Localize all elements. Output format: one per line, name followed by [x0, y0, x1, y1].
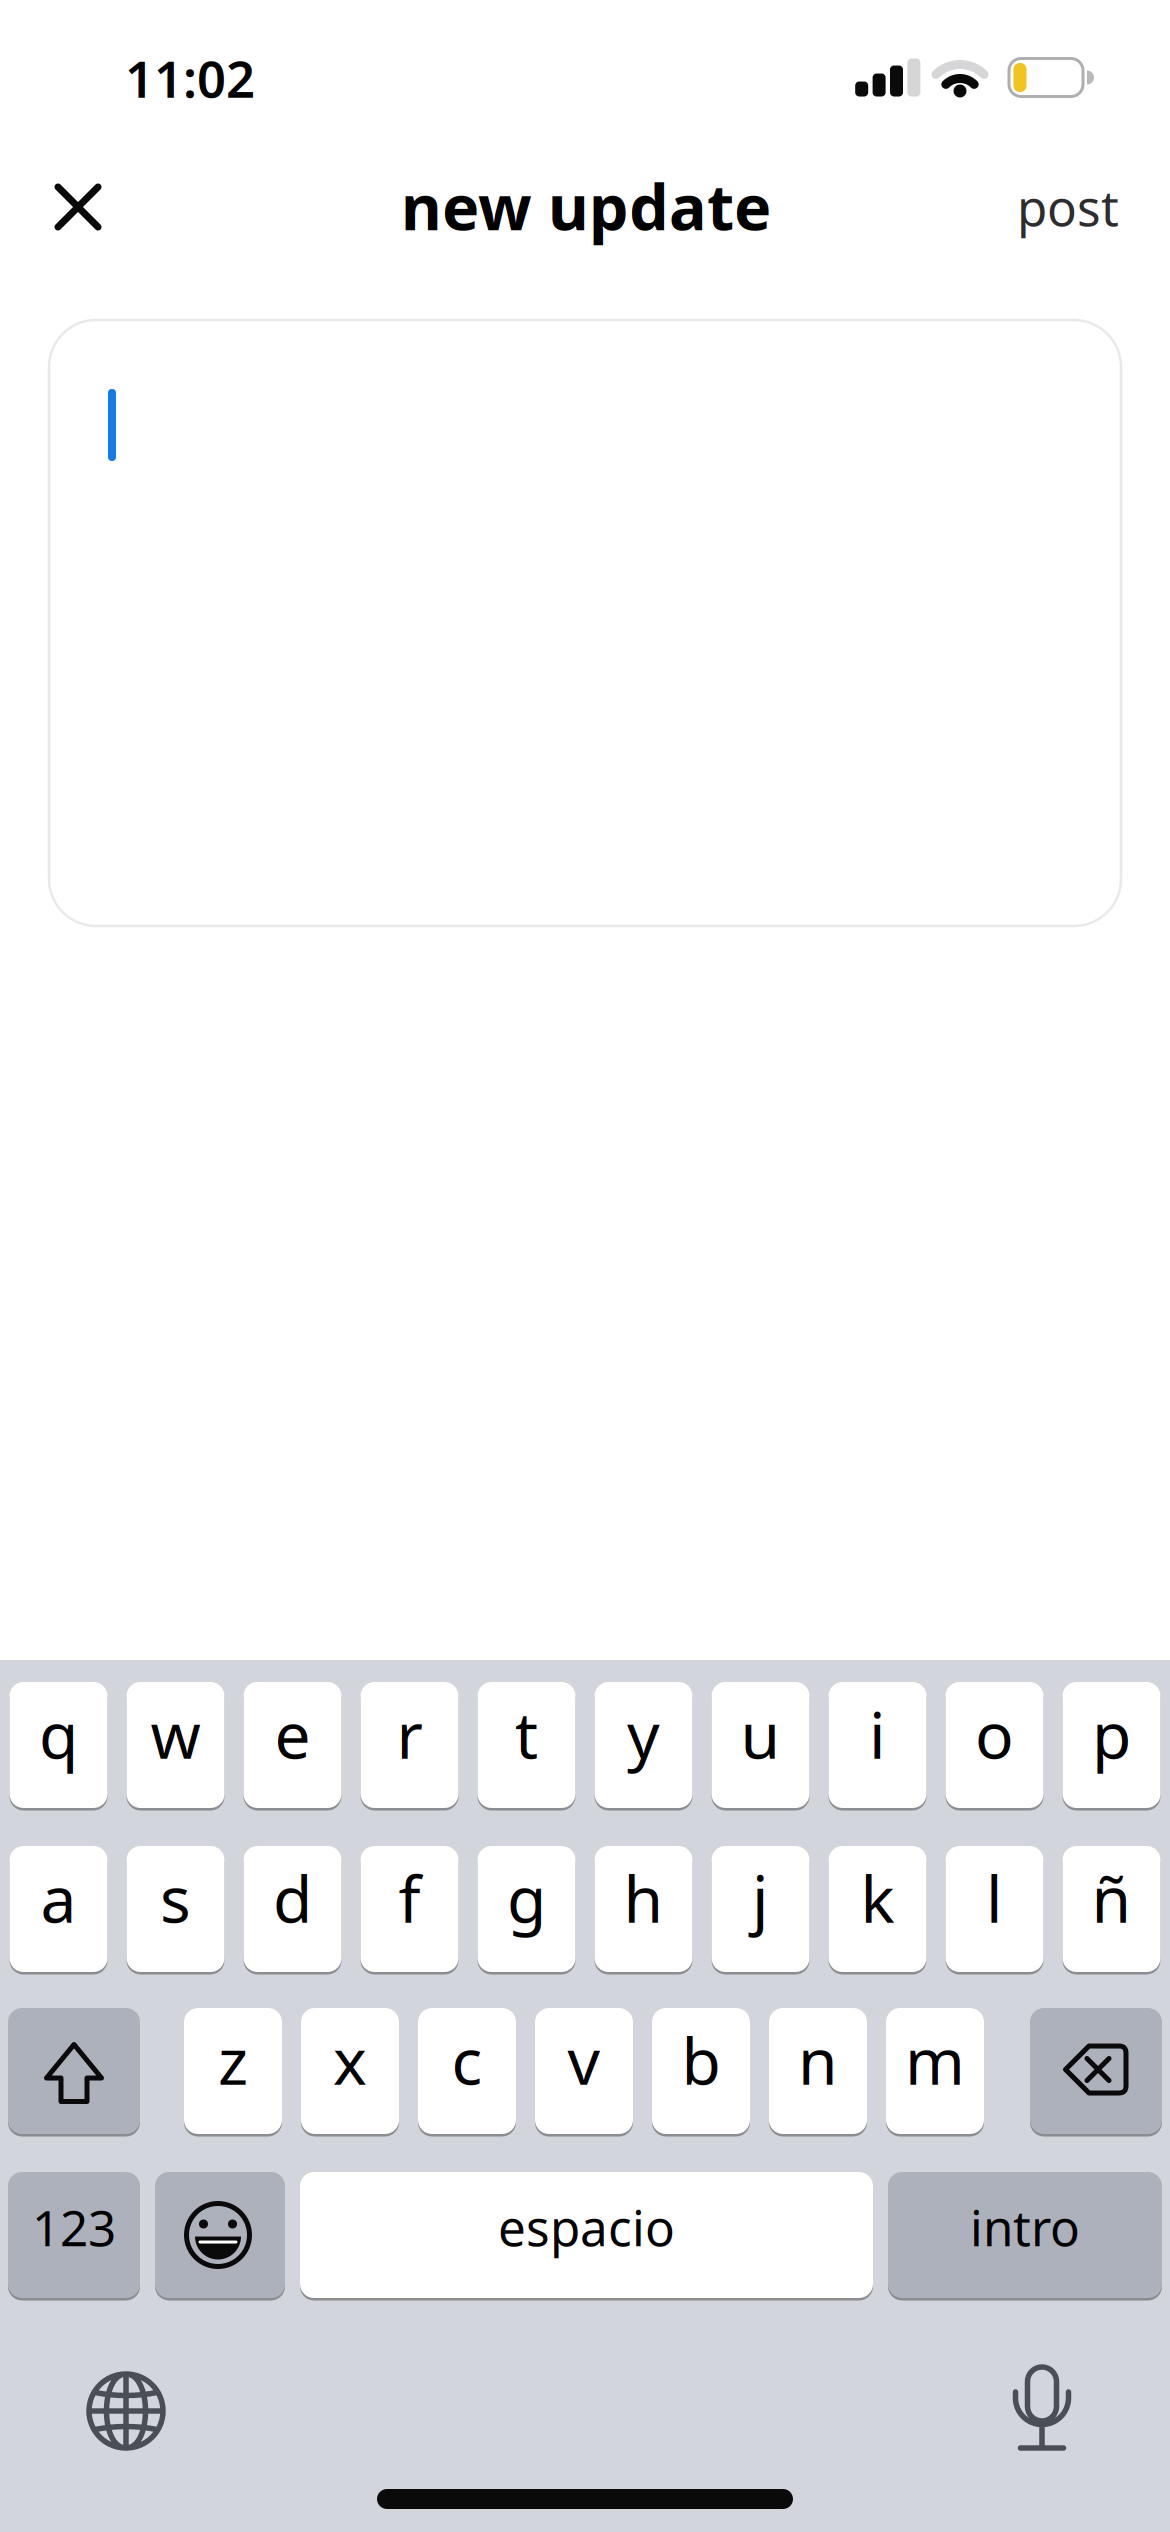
staticText: s	[160, 1855, 191, 1940]
staticText: u	[740, 1691, 780, 1776]
staticText: post	[1017, 174, 1119, 240]
button[interactable]: Delete	[1030, 2008, 1162, 2134]
staticText: q	[39, 1691, 78, 1776]
button[interactable]: b	[652, 2008, 750, 2134]
staticText: v	[567, 2017, 600, 2102]
button[interactable]: e	[243, 1682, 341, 1808]
staticText: j	[752, 1855, 769, 1940]
button[interactable]: d	[243, 1846, 341, 1972]
button[interactable]: Update text	[49, 320, 1121, 926]
button[interactable]: n	[769, 2008, 867, 2134]
staticText: ñ	[1091, 1855, 1131, 1940]
button[interactable]: j	[711, 1846, 809, 1972]
button[interactable]: intro	[888, 2172, 1162, 2298]
staticText: k	[860, 1855, 894, 1940]
button[interactable]: espacio	[300, 2172, 873, 2298]
staticText: h	[623, 1855, 663, 1940]
button[interactable]: m	[886, 2008, 984, 2134]
button[interactable]: r	[360, 1682, 458, 1808]
staticText: i	[869, 1691, 886, 1776]
button[interactable]: v	[535, 2008, 633, 2134]
staticText: w	[150, 1691, 200, 1776]
staticText: x	[333, 2017, 367, 2102]
staticText: 123	[32, 2194, 116, 2260]
staticText: g	[507, 1855, 546, 1940]
button[interactable]: Dictate	[1005, 2362, 1078, 2454]
button[interactable]: x	[301, 2008, 399, 2134]
staticText: f	[398, 1855, 420, 1940]
button[interactable]: Shift	[8, 2008, 140, 2134]
button[interactable]: i	[828, 1682, 926, 1808]
button[interactable]: post	[1017, 174, 1119, 240]
button[interactable]: h	[594, 1846, 692, 1972]
button[interactable]: a	[9, 1846, 107, 1972]
button[interactable]: 123	[8, 2172, 140, 2298]
button[interactable]: q	[9, 1682, 107, 1808]
button[interactable]: Next keyboard	[82, 2367, 170, 2455]
staticText: intro	[970, 2194, 1080, 2260]
staticText: y	[627, 1691, 660, 1776]
staticText: b	[681, 2017, 720, 2102]
staticText: r	[396, 1691, 422, 1776]
staticText: d	[273, 1855, 312, 1940]
staticText: l	[986, 1855, 1003, 1940]
button[interactable]: Close	[55, 184, 101, 230]
button[interactable]: s	[126, 1846, 224, 1972]
staticText: z	[218, 2017, 248, 2102]
staticText: t	[515, 1691, 538, 1776]
button[interactable]: u	[711, 1682, 809, 1808]
staticText: o	[975, 1691, 1014, 1776]
button[interactable]: k	[828, 1846, 926, 1972]
button[interactable]: ñ	[1062, 1846, 1160, 1972]
button[interactable]: p	[1062, 1682, 1160, 1808]
staticText: p	[1092, 1691, 1131, 1776]
button[interactable]: Emoji	[155, 2172, 285, 2298]
button[interactable]: y	[594, 1682, 692, 1808]
button[interactable]: t	[477, 1682, 575, 1808]
button[interactable]: l	[945, 1846, 1043, 1972]
staticText: c	[451, 2017, 482, 2102]
staticText: espacio	[498, 2194, 675, 2260]
button[interactable]: g	[477, 1846, 575, 1972]
button[interactable]: f	[360, 1846, 458, 1972]
staticText: e	[274, 1691, 310, 1776]
button[interactable]: o	[945, 1682, 1043, 1808]
staticText: n	[798, 2017, 838, 2102]
button[interactable]: z	[184, 2008, 282, 2134]
button[interactable]: c	[418, 2008, 516, 2134]
staticText: m	[905, 2017, 965, 2102]
staticText: a	[40, 1855, 76, 1940]
button[interactable]: w	[126, 1682, 224, 1808]
staticText: 11:02	[125, 44, 255, 112]
staticText: new update	[401, 164, 771, 248]
